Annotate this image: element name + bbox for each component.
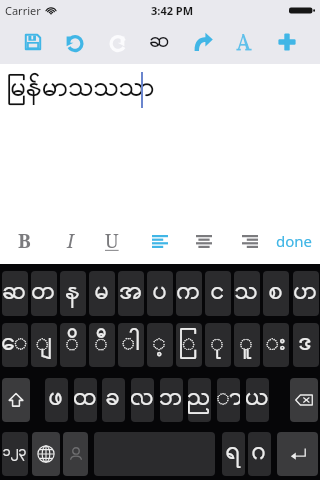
button[interactable]: ဒ xyxy=(293,323,319,367)
staticText: ဖ xyxy=(49,383,64,413)
staticText: မြန်မာသသသာ xyxy=(8,72,156,105)
button[interactable]: း xyxy=(263,323,289,367)
button[interactable]: ူ xyxy=(234,323,260,367)
button[interactable]: က xyxy=(176,271,202,316)
staticText: ု xyxy=(211,328,225,358)
staticText: လ xyxy=(131,383,154,413)
button[interactable]: ၁၂၃ xyxy=(2,432,28,476)
button[interactable]: Align right xyxy=(231,224,269,258)
button[interactable]: ျ xyxy=(31,323,57,367)
button[interactable]: Backspace xyxy=(290,378,318,422)
button[interactable]: Dictation xyxy=(63,432,88,476)
button[interactable]: န xyxy=(60,271,86,316)
staticText: ီ xyxy=(95,328,109,358)
staticText: ဆ xyxy=(3,277,27,307)
button[interactable]: မ xyxy=(89,271,115,316)
button[interactable]: တ xyxy=(31,271,57,316)
staticText: done xyxy=(276,231,313,251)
button[interactable]: Italic xyxy=(51,224,89,258)
button[interactable]: ့ xyxy=(147,323,173,367)
staticText: း xyxy=(266,328,287,358)
staticText: ာ xyxy=(217,383,240,413)
button[interactable]: ရ xyxy=(222,432,245,476)
staticText: ဂ xyxy=(252,437,267,467)
button[interactable]: Bold xyxy=(5,224,43,258)
staticText: ိ xyxy=(66,328,80,358)
button[interactable]: Undo xyxy=(57,20,91,64)
staticText: I xyxy=(67,228,74,254)
staticText: ယ xyxy=(246,383,269,413)
staticText: စ xyxy=(269,277,284,307)
staticText: ူ xyxy=(240,328,254,358)
staticText: ပ xyxy=(153,277,168,307)
button[interactable]: င xyxy=(205,271,231,316)
staticText: 3:42 PM xyxy=(151,3,194,18)
staticText: ါ xyxy=(122,328,141,358)
staticText: သ xyxy=(235,277,259,307)
staticText: ခ xyxy=(106,383,121,413)
button[interactable]: Language xyxy=(143,20,177,64)
staticText: ထ xyxy=(74,383,97,413)
staticText: အ xyxy=(120,277,143,307)
button[interactable]: Add xyxy=(270,20,304,64)
button[interactable]: Align center xyxy=(185,224,223,258)
button[interactable]: Underline xyxy=(93,224,131,258)
button[interactable]: သ xyxy=(234,271,260,316)
button[interactable]: ေ xyxy=(2,323,28,367)
staticText: ျ xyxy=(36,328,53,358)
staticText: ့ xyxy=(153,328,167,358)
button[interactable]: ြ xyxy=(176,323,202,367)
button[interactable]: ဟ xyxy=(293,271,319,316)
button[interactable]: ခ xyxy=(102,378,125,422)
button[interactable]: ီ xyxy=(89,323,115,367)
staticText: B xyxy=(18,228,31,254)
staticText: က xyxy=(177,277,201,307)
button[interactable]: Redo xyxy=(100,20,134,64)
button[interactable]: ဆ xyxy=(2,271,28,316)
staticText: Carrier xyxy=(5,3,41,18)
staticText: ြ xyxy=(180,328,198,358)
staticText: ည xyxy=(188,383,211,413)
staticText: ၁၂၃ xyxy=(3,444,27,461)
staticText: ေ xyxy=(2,328,28,358)
button[interactable]: ု xyxy=(205,323,231,367)
button[interactable]: Share xyxy=(186,20,220,64)
button[interactable]: Shift xyxy=(2,378,30,422)
button[interactable]: ါ xyxy=(118,323,144,367)
button[interactable]: ည xyxy=(188,378,211,422)
button[interactable]: Align left xyxy=(141,224,179,258)
button[interactable]: စ xyxy=(263,271,289,316)
staticText: U xyxy=(105,228,119,254)
button[interactable]: Font xyxy=(227,20,261,64)
button[interactable]: ဖ xyxy=(45,378,68,422)
button[interactable]: ာ xyxy=(217,378,240,422)
staticText: ဒ xyxy=(299,328,313,358)
button[interactable]: ဂ xyxy=(248,432,271,476)
button[interactable]: ပ xyxy=(147,271,173,316)
button[interactable]: Save xyxy=(16,20,50,64)
staticText: င xyxy=(211,277,226,307)
staticText: ဘ xyxy=(160,383,183,413)
button[interactable]: Language xyxy=(32,432,60,476)
button[interactable]: Done xyxy=(275,224,313,258)
staticText: ဟ xyxy=(294,277,318,307)
staticText: တ xyxy=(32,277,56,307)
staticText: ဆ xyxy=(150,29,171,55)
button[interactable]: ထ xyxy=(74,378,97,422)
button[interactable]: အ xyxy=(118,271,144,316)
button[interactable]: လ xyxy=(131,378,154,422)
button[interactable]: ိ xyxy=(60,323,86,367)
staticText: မ xyxy=(95,277,110,307)
staticText: ရ xyxy=(226,437,241,467)
button[interactable]: ယ xyxy=(246,378,269,422)
button[interactable]: Return xyxy=(277,432,318,476)
button[interactable]: ဘ xyxy=(160,378,183,422)
staticText: န xyxy=(66,277,81,307)
